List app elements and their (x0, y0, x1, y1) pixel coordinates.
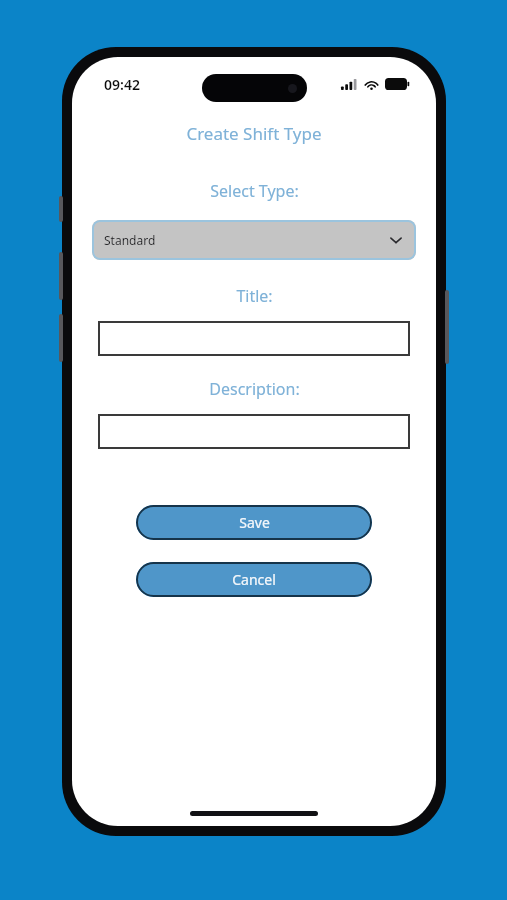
staticText: Save (239, 513, 270, 532)
other: Wi-Fi (364, 79, 379, 90)
button[interactable] (98, 414, 410, 449)
other: Battery (385, 78, 410, 90)
staticText: Title: (236, 285, 273, 307)
staticText: Cancel (232, 570, 276, 589)
staticText: 09:42 (104, 75, 140, 94)
staticText: Standard (104, 232, 156, 248)
staticText: Create Shift Type (186, 122, 322, 145)
other: Open type dropdown (388, 232, 404, 248)
other: Cellular signal (341, 79, 358, 90)
button[interactable]: Cancel (136, 562, 372, 597)
staticText: Select Type: (210, 180, 299, 202)
button[interactable] (98, 321, 410, 356)
staticText: Description: (209, 378, 300, 400)
button[interactable]: Save (136, 505, 372, 540)
button[interactable]: Standard (92, 220, 416, 260)
